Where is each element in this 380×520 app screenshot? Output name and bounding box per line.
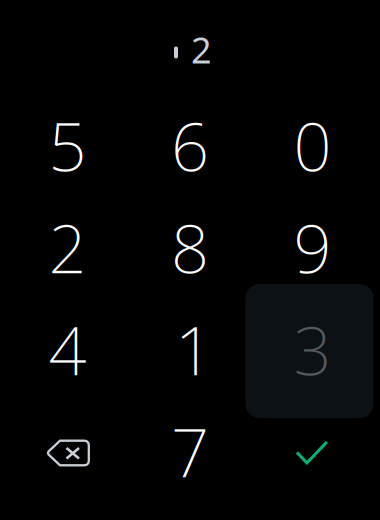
staticText: 0 <box>293 101 331 190</box>
staticText: 5 <box>48 101 86 190</box>
staticText: 6 <box>171 101 209 190</box>
staticText: 2 <box>191 26 212 73</box>
staticText: 1 <box>175 305 213 394</box>
button[interactable]: Delete <box>6 402 129 504</box>
staticText: 9 <box>293 203 331 292</box>
button[interactable]: 5 <box>6 96 129 198</box>
staticText: 7 <box>171 407 209 496</box>
button[interactable]: 3 <box>251 300 374 402</box>
button[interactable]: 9 <box>251 198 374 300</box>
button[interactable]: 6 <box>129 96 251 198</box>
button[interactable]: 7 <box>129 402 251 504</box>
button[interactable]: 0 <box>251 96 374 198</box>
staticText: 2 <box>48 203 86 292</box>
staticText: 8 <box>171 203 209 292</box>
button[interactable]: Confirm <box>251 402 374 504</box>
button[interactable]: 4 <box>6 300 129 402</box>
staticText: 4 <box>48 305 86 394</box>
button[interactable]: 2 <box>6 198 129 300</box>
button[interactable]: 1 <box>129 300 251 402</box>
staticText: 3 <box>293 305 331 394</box>
button[interactable]: 8 <box>129 198 251 300</box>
